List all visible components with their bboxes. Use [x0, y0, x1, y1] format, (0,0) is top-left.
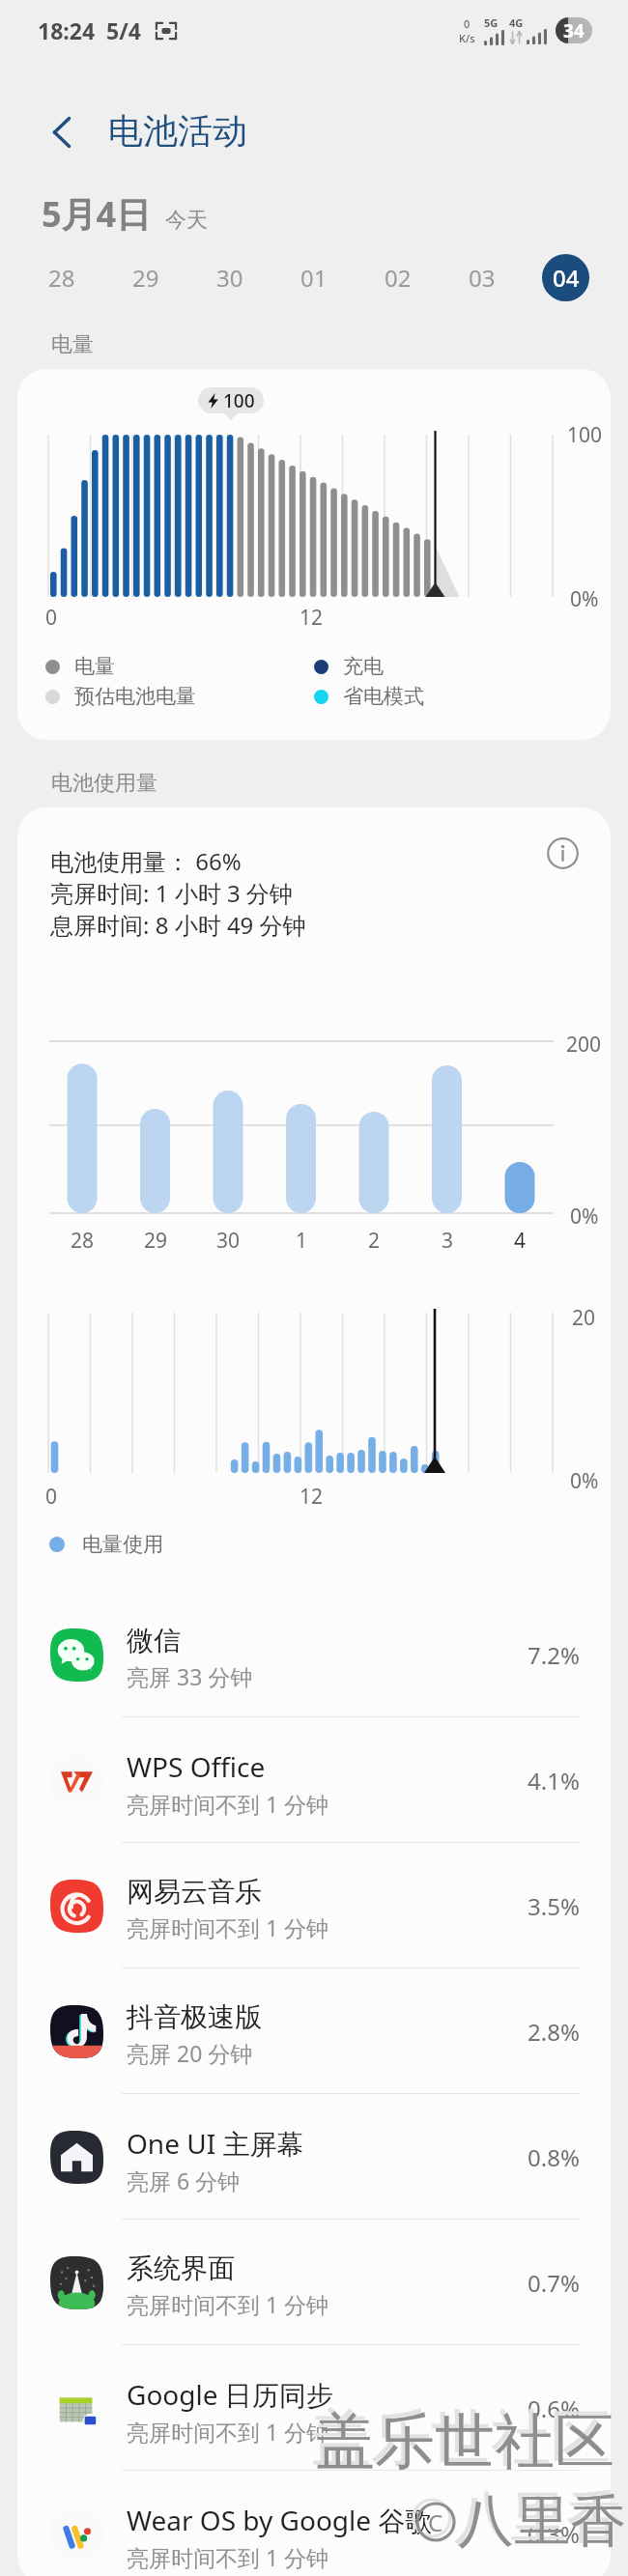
- staticText: 电池活动: [108, 109, 247, 153]
- staticText: 亮屏时间不到 1 分钟: [127, 2417, 329, 2447]
- staticText: 盖乐世社区: [315, 2404, 614, 2479]
- button[interactable]: 抖音极速版: [17, 1968, 611, 2094]
- staticText: 12: [300, 1483, 324, 1511]
- staticText: 省电模式: [343, 684, 424, 709]
- staticText: 28: [71, 1227, 95, 1255]
- staticText: 2.8%: [528, 2016, 580, 2048]
- staticText: 0.6%: [528, 2392, 580, 2424]
- staticText: 7.2%: [528, 1639, 580, 1671]
- staticText: 34: [563, 18, 585, 43]
- staticText: 0: [45, 1483, 58, 1511]
- staticText: 29: [144, 1227, 168, 1255]
- staticText: 20: [572, 1304, 596, 1332]
- staticText: 电池使用量: [51, 770, 157, 797]
- button[interactable]: 02: [356, 247, 440, 307]
- staticText: 03: [469, 262, 496, 294]
- button[interactable]: 29: [103, 247, 187, 307]
- staticText: 充电: [343, 654, 384, 679]
- button[interactable]: 04: [524, 247, 608, 307]
- staticText: 亮屏时间: 1 小时 3 分钟: [50, 877, 293, 909]
- button[interactable]: Info: [537, 828, 587, 878]
- staticText: 亮屏时间不到 1 分钟: [127, 2289, 329, 2319]
- staticText: 电池使用量： 66%: [50, 845, 242, 877]
- staticText: 亮屏时间不到 1 分钟: [127, 1912, 329, 1942]
- staticText: K/s: [459, 31, 475, 45]
- staticText: 1: [296, 1227, 308, 1255]
- staticText: 系统界面: [127, 2251, 235, 2285]
- staticText: WPS Office: [127, 1748, 266, 1785]
- staticText: 30: [216, 1227, 241, 1255]
- staticText: 0.3%: [528, 2518, 580, 2550]
- staticText: 01: [300, 262, 328, 294]
- staticText: 30: [216, 262, 243, 294]
- staticText: 200: [566, 1031, 602, 1059]
- button[interactable]: 03: [440, 247, 524, 307]
- button[interactable]: Google 日历同步: [17, 2345, 611, 2471]
- staticText: One UI 主屏幕: [127, 2125, 304, 2162]
- staticText: 0%: [570, 1203, 599, 1231]
- staticText: 100: [223, 388, 255, 413]
- staticText: Wear OS by Google 谷歌: [127, 2502, 433, 2538]
- staticText: 5/4: [106, 15, 141, 45]
- staticText: 4.1%: [528, 1765, 580, 1797]
- staticText: C: [428, 2506, 443, 2538]
- button[interactable]: 30: [187, 247, 271, 307]
- staticText: 八里香: [454, 2482, 622, 2553]
- staticText: 亮屏 20 分钟: [127, 2038, 253, 2068]
- staticText: 亮屏时间不到 1 分钟: [127, 2542, 329, 2572]
- staticText: 4G: [509, 15, 524, 30]
- button[interactable]: 系统界面: [17, 2220, 611, 2345]
- staticText: Google 日历同步: [127, 2376, 333, 2413]
- staticText: 今天: [165, 207, 208, 234]
- staticText: 0: [45, 604, 58, 632]
- staticText: 4: [514, 1227, 527, 1255]
- staticText: 微信: [127, 1624, 181, 1657]
- staticText: 亮屏时间不到 1 分钟: [127, 1789, 329, 1819]
- staticText: 预估电池电量: [74, 684, 196, 709]
- button[interactable]: Back: [38, 108, 86, 156]
- staticText: 04: [553, 262, 580, 294]
- button[interactable]: 网易云音乐: [17, 1843, 611, 1968]
- button[interactable]: 01: [271, 247, 356, 307]
- staticText: 5月4日: [42, 190, 152, 238]
- staticText: 100: [567, 421, 603, 449]
- staticText: 盖乐世社区: [311, 2400, 611, 2476]
- staticText: 电量使用: [82, 1532, 163, 1557]
- staticText: 电量: [74, 654, 115, 679]
- button[interactable]: Wear OS by Google 谷歌: [17, 2471, 611, 2576]
- staticText: 网易云音乐: [127, 1875, 262, 1909]
- button[interactable]: 28: [20, 247, 103, 307]
- staticText: 29: [132, 262, 159, 294]
- button[interactable]: WPS Office: [17, 1717, 611, 1843]
- staticText: 28: [48, 262, 75, 294]
- button[interactable]: 微信: [17, 1592, 611, 1717]
- staticText: 0: [464, 16, 471, 31]
- staticText: 亮屏 6 分钟: [127, 2166, 241, 2195]
- staticText: 2: [368, 1227, 381, 1255]
- staticText: 3: [442, 1227, 454, 1255]
- staticText: 18:24: [38, 15, 96, 45]
- staticText: 0.8%: [528, 2141, 580, 2173]
- staticText: 12: [300, 604, 324, 632]
- staticText: 0.7%: [528, 2267, 580, 2299]
- staticText: 息屏时间: 8 小时 49 分钟: [50, 909, 306, 941]
- staticText: 电量: [51, 331, 94, 358]
- button[interactable]: One UI 主屏幕: [17, 2094, 611, 2220]
- staticText: 亮屏 33 分钟: [127, 1661, 253, 1691]
- staticText: 02: [385, 262, 412, 294]
- staticText: 抖音极速版: [127, 2000, 262, 2034]
- staticText: 0%: [570, 1467, 599, 1495]
- staticText: 5G: [484, 15, 499, 30]
- staticText: 0%: [570, 585, 599, 613]
- staticText: 八里香: [458, 2486, 626, 2557]
- staticText: 3.5%: [528, 1890, 580, 1922]
